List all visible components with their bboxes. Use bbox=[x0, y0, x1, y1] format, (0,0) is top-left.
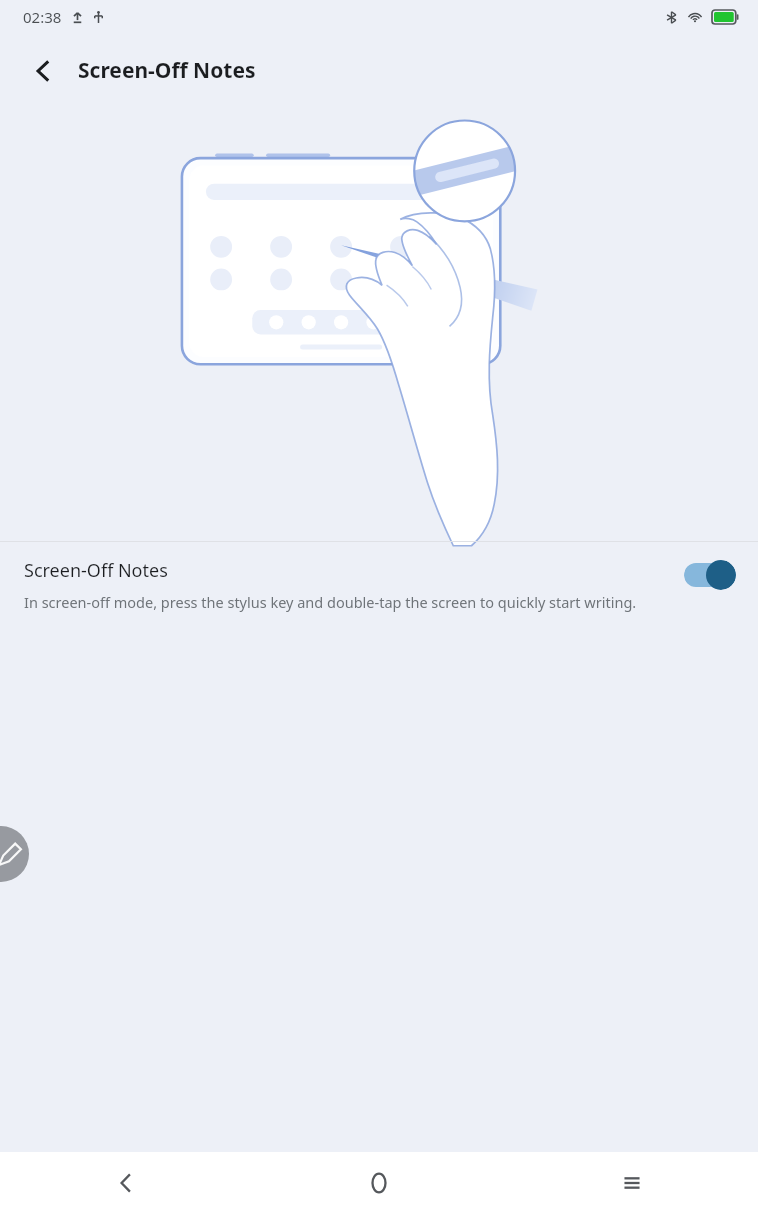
button[interactable]: Back bbox=[20, 48, 66, 94]
staticText: In screen-off mode, press the stylus key… bbox=[24, 592, 637, 612]
button[interactable]: Home bbox=[252, 1152, 505, 1213]
staticText: Screen-Off Notes bbox=[78, 56, 256, 85]
button[interactable]: Screen-Off Notes toggle bbox=[684, 560, 736, 590]
staticText: 02:38 bbox=[23, 7, 62, 27]
button[interactable]: Recent apps bbox=[505, 1152, 758, 1213]
button[interactable]: Screen-Off Notes bbox=[0, 542, 758, 628]
button[interactable]: Back bbox=[0, 1152, 252, 1213]
staticText: Screen-Off Notes bbox=[24, 558, 168, 583]
button[interactable]: Stylus tools bbox=[0, 826, 29, 882]
